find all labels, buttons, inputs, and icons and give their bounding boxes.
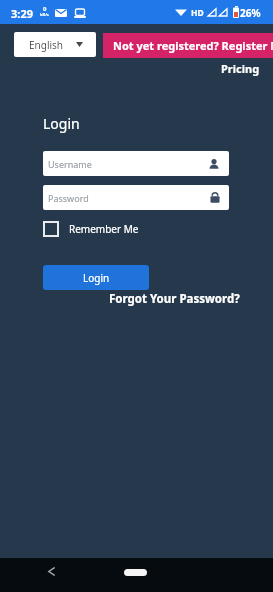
staticText: 26% [240, 6, 261, 20]
staticText: Not yet registered? Register Now! [113, 38, 273, 53]
staticText: Username [48, 158, 92, 170]
button[interactable]: Forgot Your Password? [109, 291, 240, 307]
staticText: kB/s [40, 12, 49, 17]
button[interactable] [48, 567, 55, 576]
staticText: Login [43, 114, 80, 133]
staticText: Remember Me [69, 222, 139, 236]
staticText: 0 [43, 5, 47, 13]
button[interactable] [124, 569, 147, 576]
staticText: English [29, 38, 64, 52]
button[interactable]: English [14, 32, 96, 57]
staticText: HD [191, 7, 204, 19]
staticText: 3:29 [11, 6, 33, 21]
button[interactable]: Login [43, 265, 149, 290]
button[interactable]: Pricing [221, 61, 260, 76]
button[interactable]: Remember Me [43, 221, 139, 237]
staticText: Login [83, 271, 110, 285]
button[interactable]: Password [43, 185, 229, 210]
staticText: Password [48, 192, 89, 204]
button[interactable]: Not yet registered? Register Now! [103, 33, 273, 58]
button[interactable]: Username [43, 151, 229, 176]
